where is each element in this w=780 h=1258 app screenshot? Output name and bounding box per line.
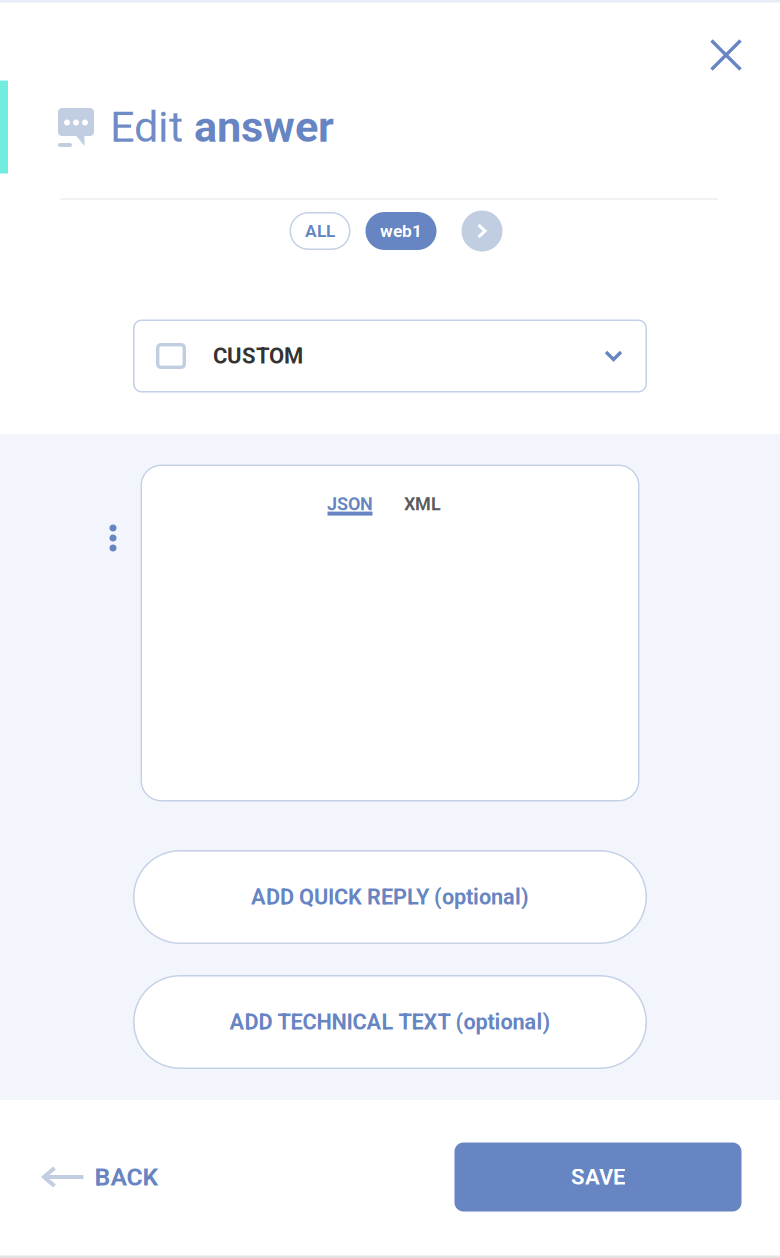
button[interactable]: More options (99, 514, 126, 561)
staticText: JSON (327, 493, 373, 515)
button[interactable]: SAVE (454, 1142, 741, 1211)
button[interactable]: BACK (37, 1146, 162, 1207)
staticText: CUSTOM (213, 343, 303, 369)
button[interactable]: web1 (365, 212, 436, 250)
button[interactable]: ALL (289, 212, 350, 250)
staticText: BACK (94, 1162, 158, 1191)
staticText: ADD TECHNICAL TEXT (optional) (229, 1009, 550, 1035)
button[interactable]: ADD QUICK REPLY (optional) (133, 850, 647, 944)
button[interactable]: JSON (327, 493, 373, 519)
staticText: ADD QUICK REPLY (optional) (251, 884, 529, 910)
button[interactable]: Next (461, 210, 502, 251)
button[interactable]: XML (400, 493, 445, 519)
staticText: XML (404, 493, 441, 515)
staticText: Edit (110, 102, 194, 152)
button[interactable]: CUSTOM (133, 319, 647, 392)
button[interactable]: Close (697, 26, 755, 84)
staticText: ALL (305, 221, 335, 241)
staticText: answer (194, 102, 334, 152)
button[interactable]: ADD TECHNICAL TEXT (optional) (133, 975, 647, 1069)
staticText: web1 (380, 221, 422, 241)
staticText: SAVE (571, 1164, 625, 1190)
